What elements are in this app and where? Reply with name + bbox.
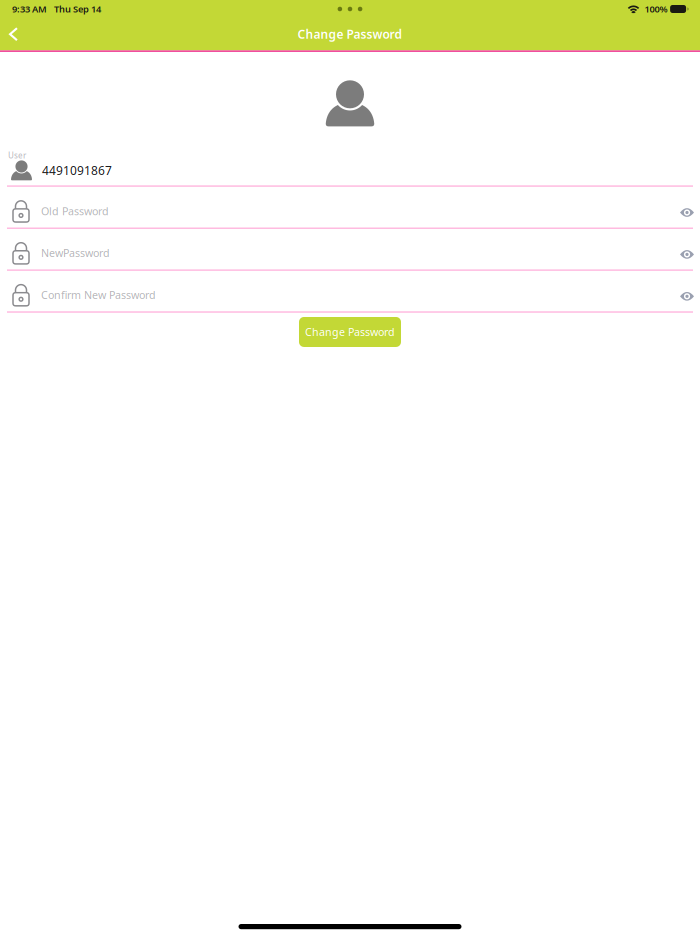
staticText: Old Password [41, 204, 109, 218]
staticText: User [8, 150, 26, 161]
button[interactable]: Change Password [299, 317, 401, 347]
staticText: Confirm New Password [41, 288, 156, 302]
button[interactable]: Show password [669, 196, 699, 226]
button[interactable]: Back [0, 18, 27, 50]
staticText: NewPassword [41, 246, 110, 260]
button[interactable]: Show password [669, 238, 699, 268]
staticText: 9:33 AM [12, 3, 47, 15]
staticText: 100% [644, 3, 667, 15]
staticText: Thu Sep 14 [54, 3, 101, 15]
staticText: Change Password [305, 325, 395, 339]
staticText: Change Password [297, 26, 402, 42]
button[interactable]: Show password [669, 280, 699, 310]
staticText: 4491091867 [42, 162, 112, 178]
